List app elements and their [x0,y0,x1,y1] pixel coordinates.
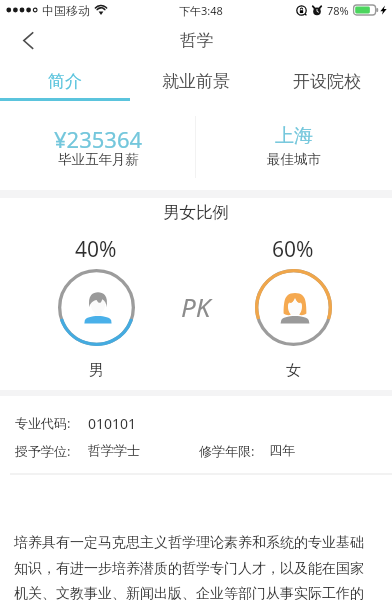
button[interactable]: 上海 [196,103,392,190]
staticText: 四年 [269,442,295,458]
staticText: 78% [327,3,349,18]
staticText: 修学年限: [199,442,255,460]
staticText: PK [181,289,211,324]
staticText: 男 [89,361,104,380]
button[interactable]: 60% [254,241,332,381]
button[interactable]: 40% [57,241,135,381]
staticText: 哲学 [180,30,213,51]
button[interactable]: ¥235364 [0,103,196,190]
staticText: 上海 [275,124,313,148]
staticText: 男女比例 [163,202,229,223]
staticText: 毕业五年月薪 [58,151,139,168]
staticText: 下午3:48 [179,3,223,18]
staticText: 授予学位: [15,442,71,460]
staticText: 培养具有一定马克思主义哲学理论素养和系统的专业基础 知识，有进一步培养潜质的哲学… [14,534,364,600]
staticText: 最佳城市 [267,151,321,168]
button[interactable]: 就业前景 [130,64,261,98]
staticText: 010101 [88,414,137,433]
staticText: ¥235364 [54,124,143,154]
staticText: 开设院校 [293,71,361,92]
staticText: 哲学学士 [88,442,140,458]
staticText: 中国移动 [42,3,90,18]
staticText: 简介 [48,71,82,92]
staticText: 就业前景 [162,71,230,92]
button[interactable]: 开设院校 [261,64,392,98]
staticText: 40% [75,235,117,264]
staticText: 60% [272,235,314,264]
staticText: 专业代码: [15,414,71,432]
button[interactable]: 简介 [0,64,130,98]
staticText: 女 [286,361,301,380]
button[interactable]: Back [9,22,49,62]
